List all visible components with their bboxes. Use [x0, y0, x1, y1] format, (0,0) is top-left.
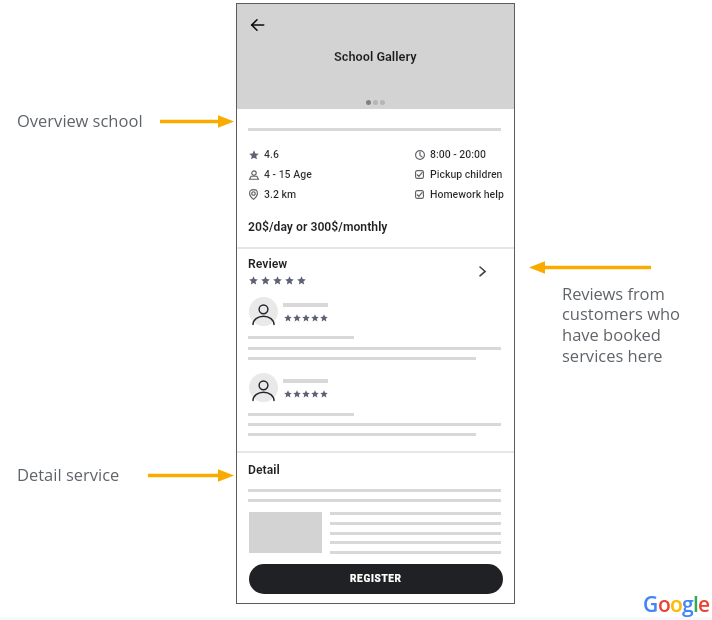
staticText: G — [643, 590, 658, 619]
staticText: Homework help — [430, 188, 504, 200]
staticText: Reviews from customers who have booked s… — [562, 282, 681, 367]
button[interactable]: Back — [243, 11, 271, 39]
staticText: 20$/day or 300$/monthly — [248, 220, 388, 234]
staticText: o — [658, 590, 670, 619]
staticText: Detail service — [17, 463, 120, 485]
staticText: o — [670, 590, 682, 619]
staticText: e — [698, 590, 710, 619]
staticText: Review — [248, 257, 288, 271]
staticText: Overview school — [17, 109, 143, 131]
staticText: REGISTER — [350, 573, 402, 585]
staticText: Detail — [248, 463, 280, 477]
button[interactable]: Review — [236, 253, 515, 297]
staticText: l — [693, 590, 698, 619]
staticText: 8:00 - 20:00 — [430, 148, 487, 160]
staticText: g — [682, 590, 693, 619]
staticText: 4.6 — [264, 148, 279, 160]
staticText: Pickup children — [430, 168, 503, 180]
staticText: School Gallery — [334, 49, 417, 64]
button[interactable]: REGISTER — [249, 564, 503, 594]
staticText: 3.2 km — [264, 188, 297, 200]
staticText: 4 - 15 Age — [264, 168, 312, 180]
